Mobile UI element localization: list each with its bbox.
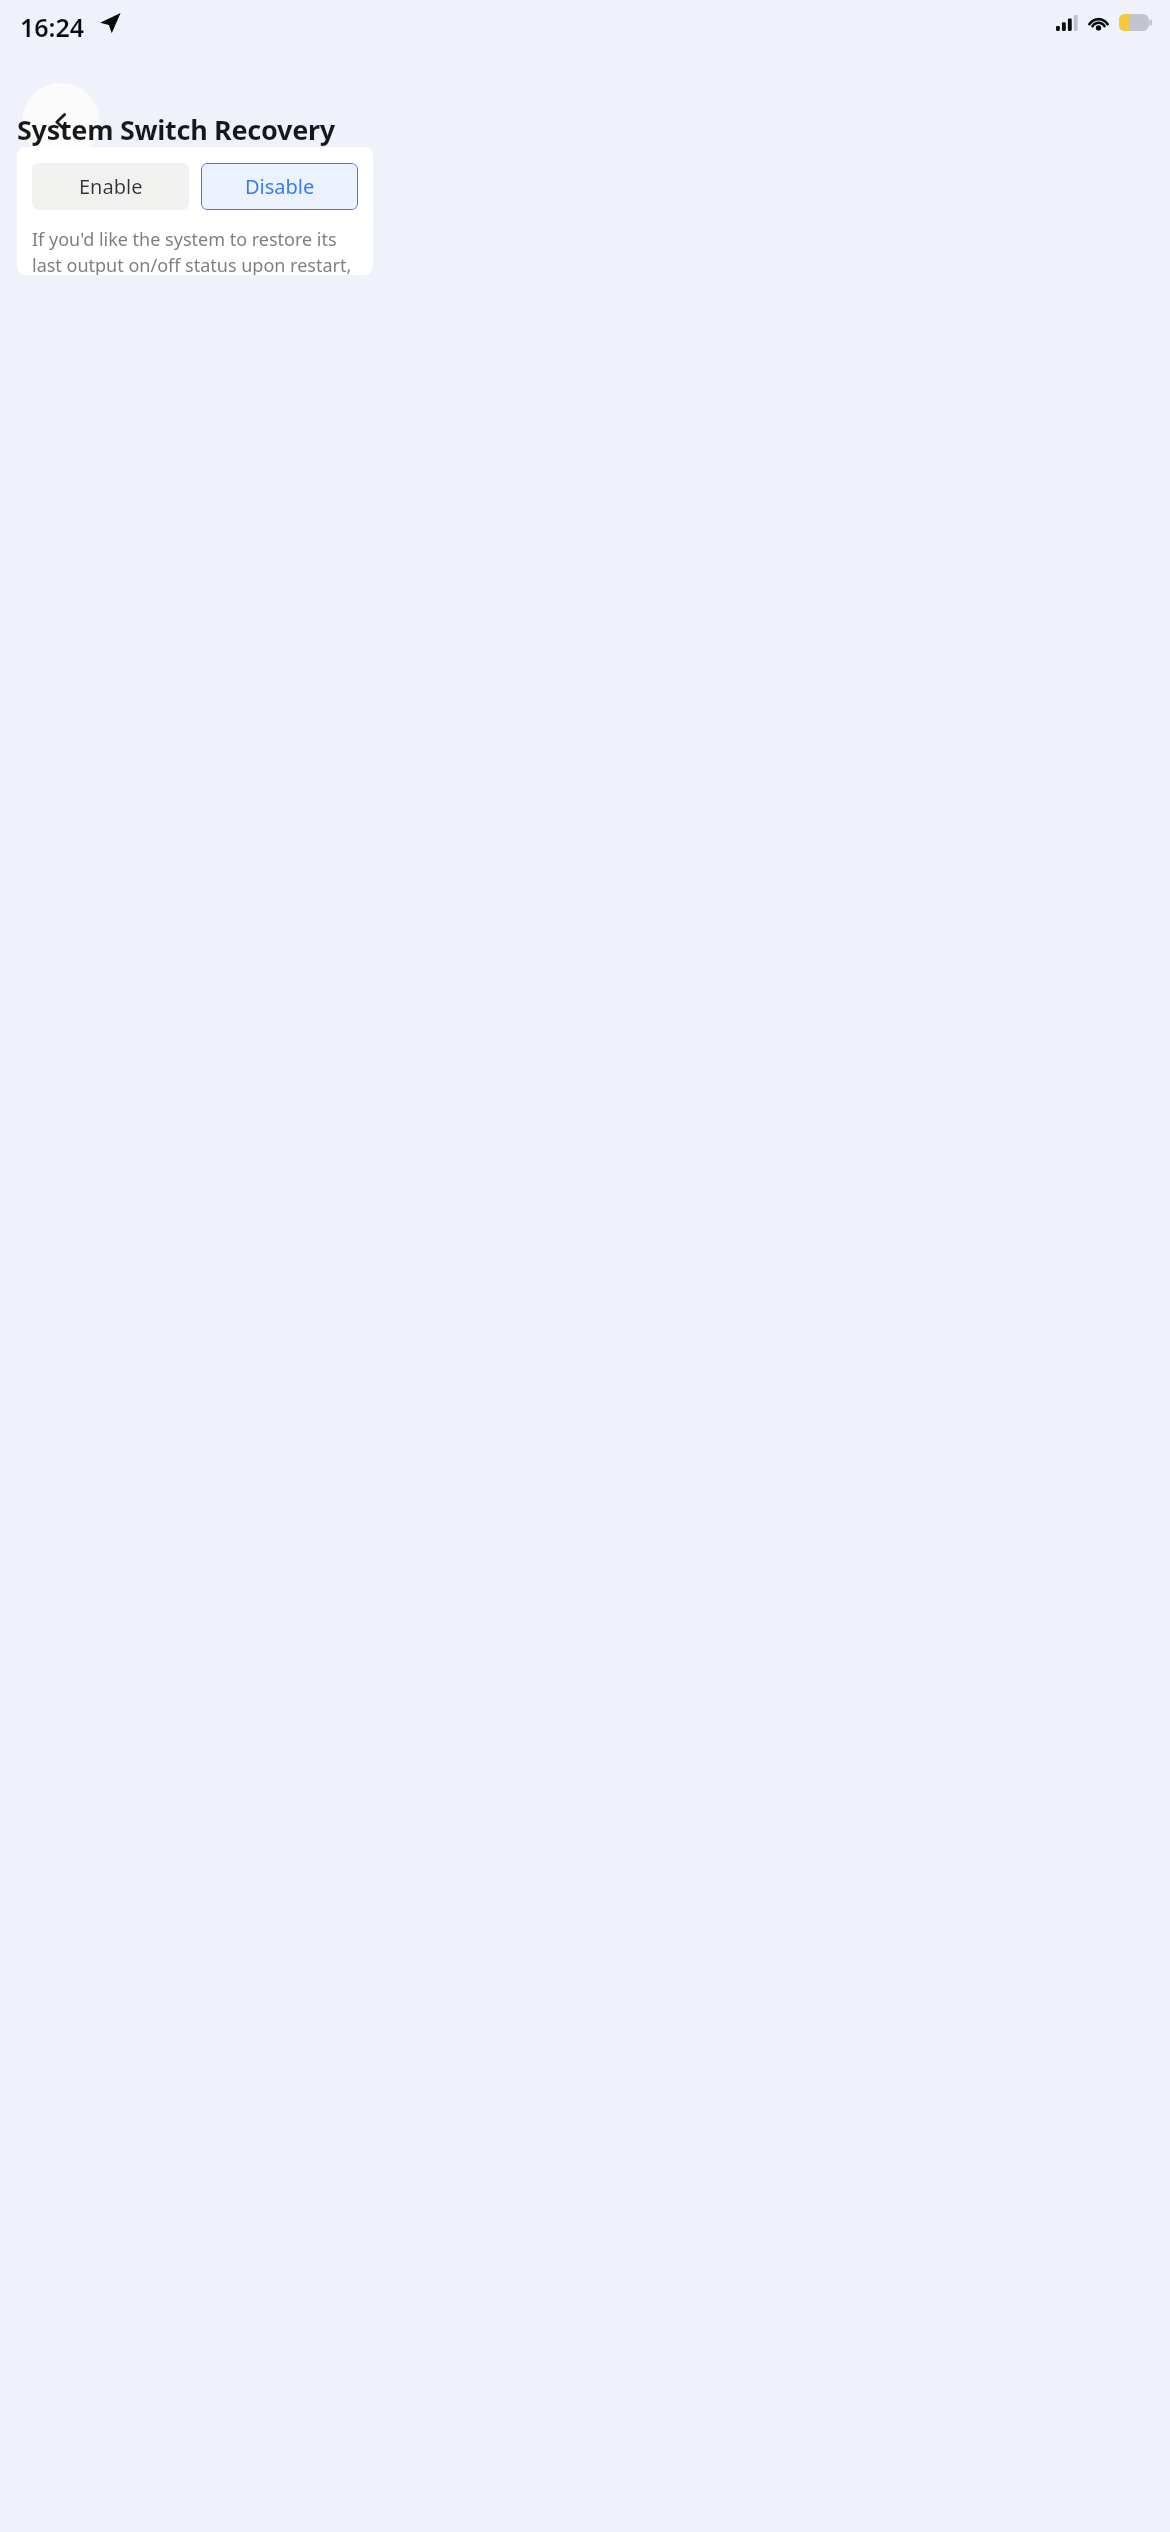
button[interactable]: Enable [32,163,189,210]
staticText: Disable [245,173,315,200]
button[interactable]: Back [22,83,100,161]
staticText: Enable [79,173,143,200]
button[interactable]: Disable [201,163,358,210]
staticText: System Switch Recovery [17,111,335,148]
staticText: 16:24 [20,10,85,44]
staticText: If you'd like the system to restore its … [32,227,358,275]
